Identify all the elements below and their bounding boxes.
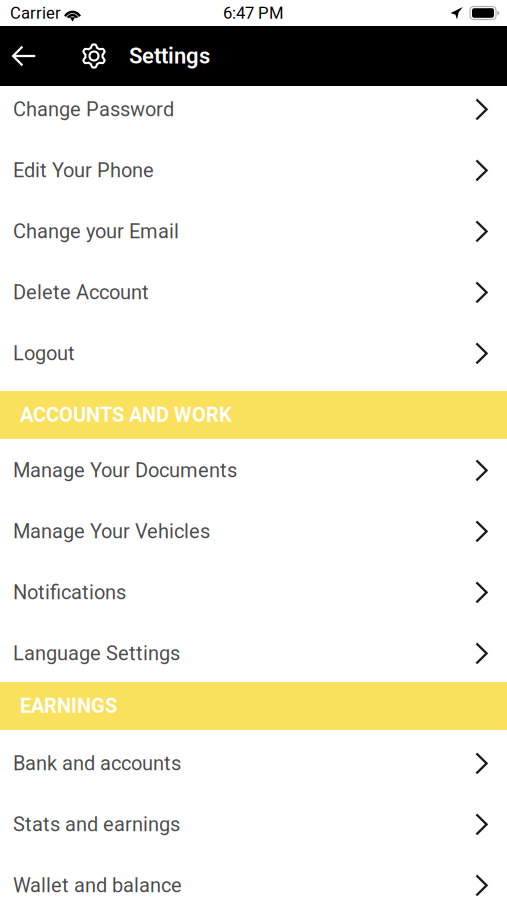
staticText: Language Settings bbox=[13, 642, 180, 665]
button[interactable]: Change your Email bbox=[0, 208, 507, 269]
staticText: Stats and earnings bbox=[13, 813, 180, 836]
button[interactable]: Logout bbox=[0, 330, 507, 391]
staticText: Manage Your Vehicles bbox=[13, 520, 210, 543]
staticText: Manage Your Documents bbox=[13, 459, 237, 482]
button[interactable]: Stats and earnings bbox=[0, 801, 507, 862]
staticText: Change Password bbox=[13, 98, 174, 121]
staticText: Edit Your Phone bbox=[13, 159, 154, 182]
staticText: Logout bbox=[13, 342, 75, 365]
button[interactable]: Wallet and balance bbox=[0, 862, 507, 900]
staticText: EARNINGS bbox=[20, 694, 117, 718]
button[interactable]: Change Password bbox=[0, 86, 507, 147]
staticText: 6:47 PM bbox=[223, 3, 284, 23]
button[interactable]: Back bbox=[0, 26, 48, 86]
button[interactable]: Manage Your Documents bbox=[0, 447, 507, 508]
button[interactable]: Language Settings bbox=[0, 630, 507, 682]
button[interactable]: Notifications bbox=[0, 569, 507, 630]
staticText: ACCOUNTS AND WORK bbox=[20, 403, 232, 427]
staticText: Notifications bbox=[13, 581, 126, 604]
button[interactable]: Manage Your Vehicles bbox=[0, 508, 507, 569]
staticText: Carrier bbox=[10, 3, 61, 23]
button[interactable]: Bank and accounts bbox=[0, 740, 507, 801]
staticText: Wallet and balance bbox=[13, 874, 182, 897]
staticText: Delete Account bbox=[13, 281, 149, 304]
button[interactable]: Delete Account bbox=[0, 269, 507, 330]
button[interactable]: Edit Your Phone bbox=[0, 147, 507, 208]
staticText: Settings bbox=[129, 43, 210, 69]
staticText: Bank and accounts bbox=[13, 752, 181, 775]
button[interactable]: Settings options bbox=[81, 26, 107, 86]
staticText: Change your Email bbox=[13, 220, 179, 243]
